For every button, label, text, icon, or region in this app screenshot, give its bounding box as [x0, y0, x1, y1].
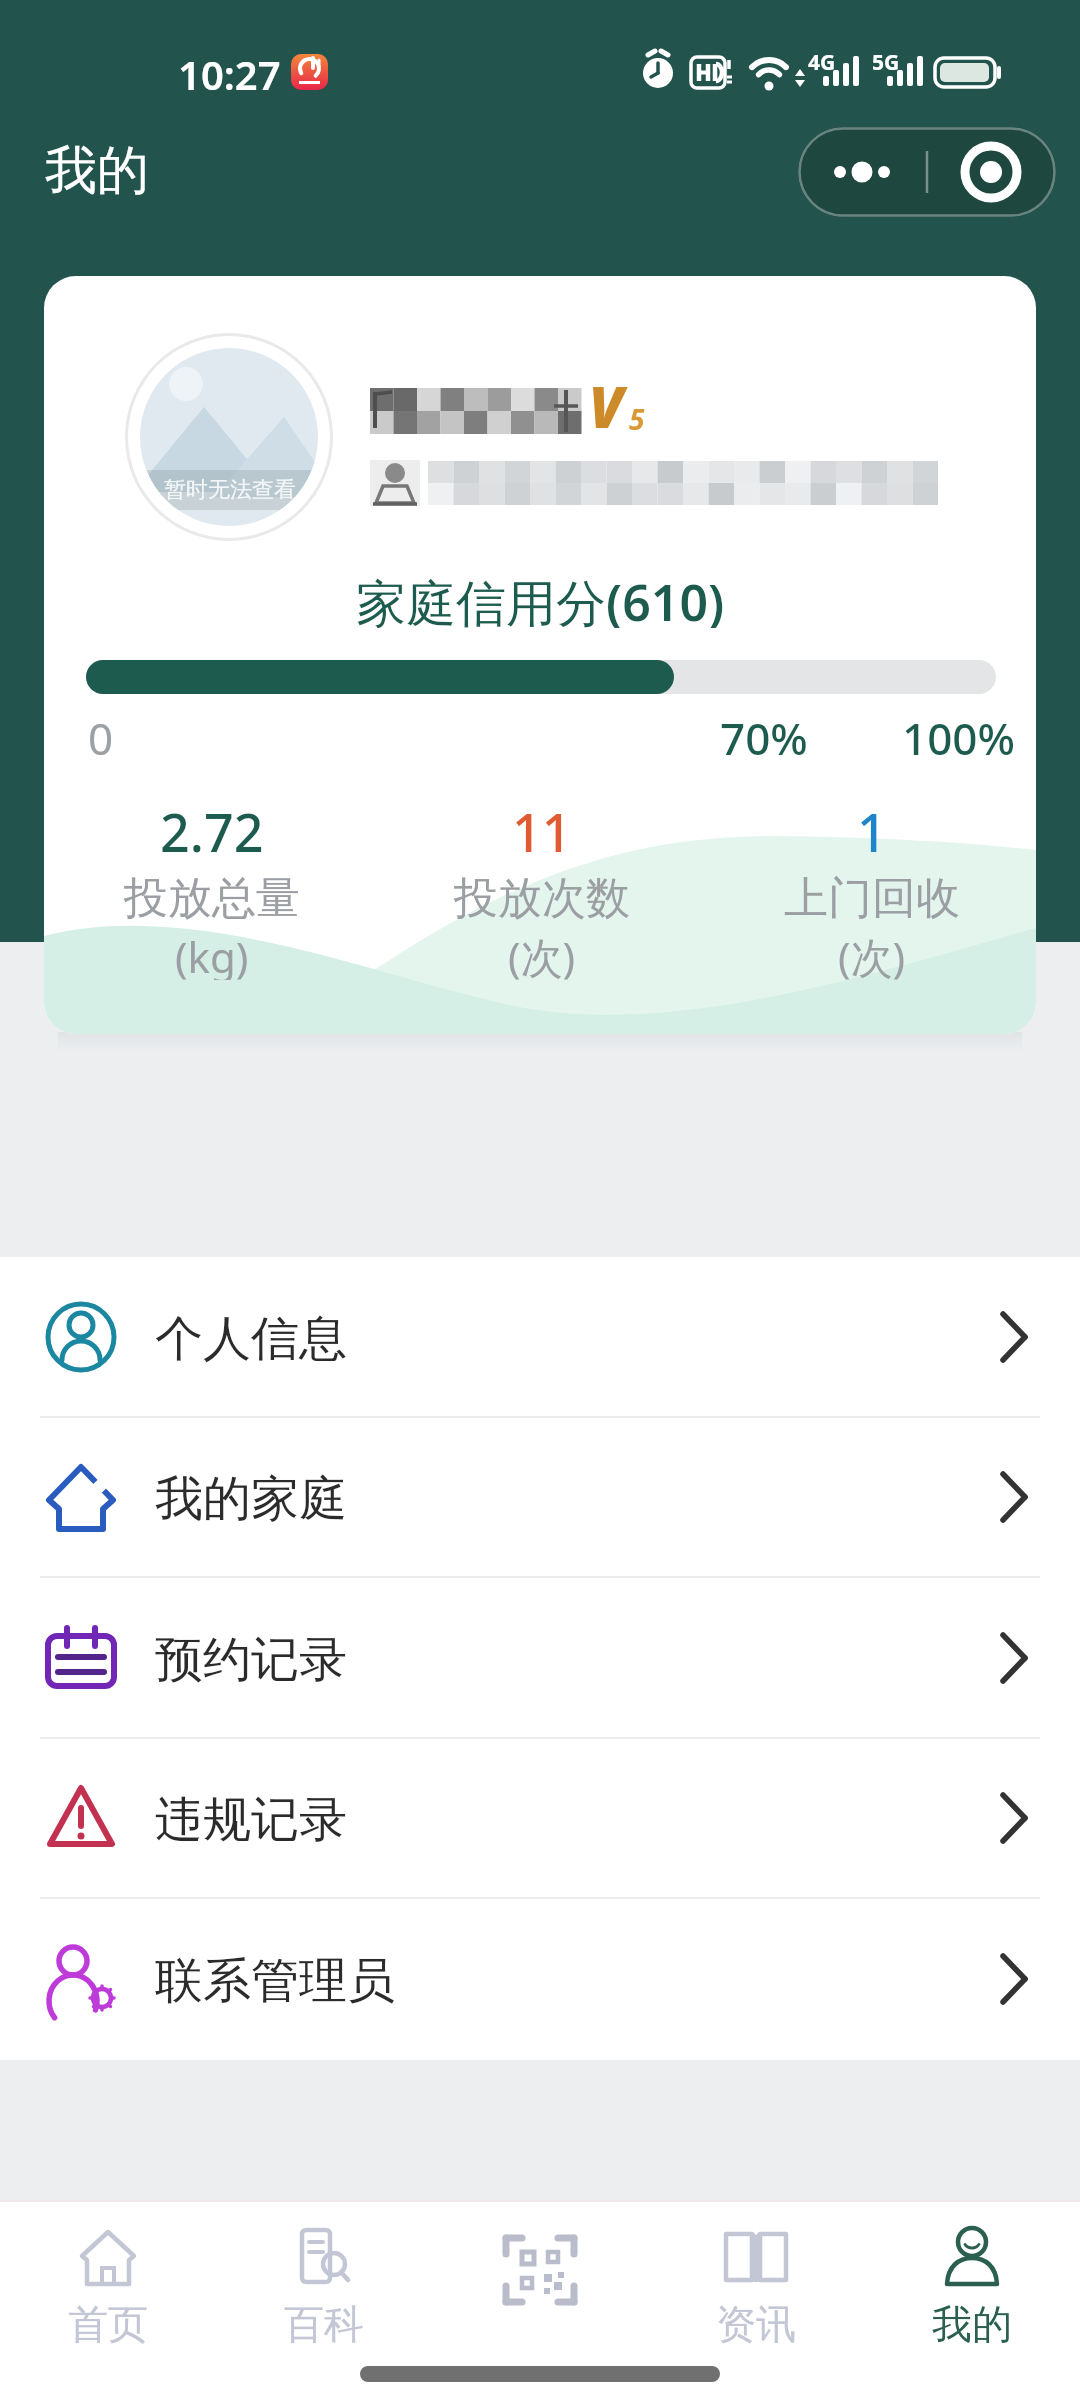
staticText: 1	[857, 796, 887, 856]
staticText: 我的家庭	[155, 1469, 347, 1529]
button[interactable]	[798, 127, 1056, 217]
staticText: 11	[512, 796, 572, 856]
staticText: 违规记录	[155, 1790, 347, 1850]
button[interactable]: 百科	[216, 2200, 432, 2400]
button[interactable]: 首页	[0, 2200, 216, 2400]
button[interactable]	[432, 2200, 648, 2400]
staticText: V	[589, 368, 624, 444]
staticText: 我的	[45, 138, 149, 204]
staticText: (次)	[838, 928, 906, 980]
staticText: 预约记录	[155, 1630, 347, 1690]
staticText: (次)	[508, 928, 576, 980]
button[interactable]: 预约记录	[0, 1578, 1080, 1738]
staticText: 5G	[872, 48, 900, 77]
staticText: 上门回收	[784, 871, 960, 923]
button[interactable]: 违规记录	[0, 1738, 1080, 1898]
staticText: 4G	[808, 48, 836, 77]
staticText: 我的	[932, 2299, 1012, 2349]
button[interactable]: 资讯	[648, 2200, 864, 2400]
staticText: 暂时无法查看	[164, 476, 296, 504]
staticText: 资讯	[716, 2299, 796, 2349]
staticText: (kg)	[175, 928, 249, 980]
staticText: 100%	[902, 708, 1015, 768]
staticText: 百科	[284, 2299, 364, 2349]
button[interactable]: 暂时无法查看	[44, 276, 1036, 1034]
staticText: 投放次数	[454, 871, 630, 923]
staticText: 联系管理员	[155, 1951, 395, 2011]
button[interactable]: 我的	[864, 2200, 1080, 2400]
staticText: 个人信息	[155, 1309, 347, 1369]
staticText: 5	[629, 400, 645, 438]
button[interactable]: 个人信息	[0, 1257, 1080, 1417]
staticText: 2.72	[160, 796, 264, 856]
staticText: 0	[88, 708, 114, 768]
staticText: 70%	[720, 708, 808, 768]
staticText: 10:27	[178, 47, 281, 101]
staticText: 投放总量	[124, 871, 300, 923]
staticText: 首页	[68, 2299, 148, 2349]
button[interactable]: 我的家庭	[0, 1417, 1080, 1577]
button[interactable]: 联系管理员	[0, 1899, 1080, 2059]
staticText: 家庭信用分(610)	[356, 568, 725, 628]
